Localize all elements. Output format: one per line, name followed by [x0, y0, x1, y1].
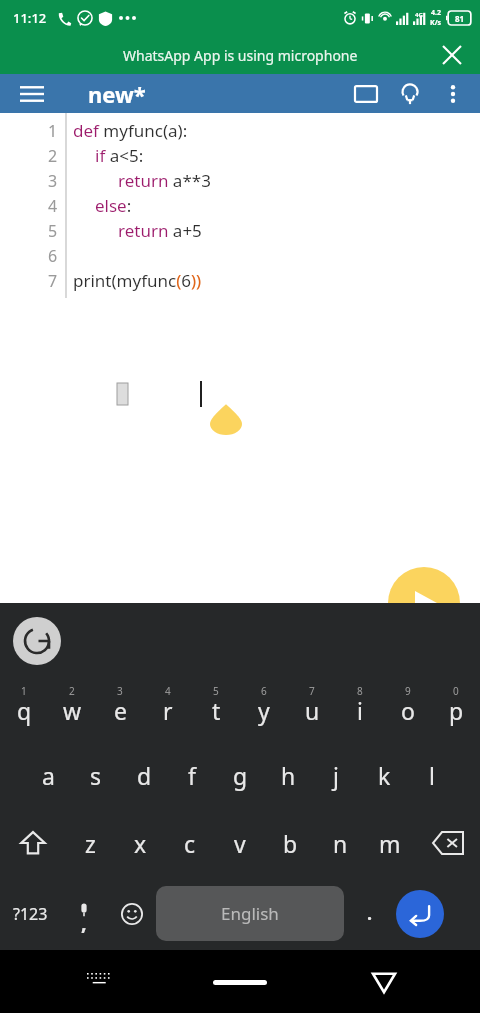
staticText: z — [85, 828, 96, 859]
button[interactable]: x — [115, 809, 165, 877]
button[interactable]: Home — [205, 967, 275, 997]
button[interactable]: l — [408, 741, 456, 809]
button[interactable]: f — [168, 741, 216, 809]
staticText: y — [258, 695, 270, 726]
button[interactable]: Run — [388, 567, 460, 639]
staticText: 7 — [48, 270, 58, 292]
staticText: e — [114, 695, 127, 726]
staticText: a — [42, 760, 55, 791]
staticText: new* — [88, 79, 146, 109]
button[interactable]: Menu — [12, 74, 52, 113]
staticText: g — [233, 760, 248, 791]
button[interactable]: Open file — [344, 74, 388, 113]
button[interactable]: 9 — [384, 673, 432, 741]
staticText: d — [137, 760, 152, 791]
staticText: 2 — [48, 145, 58, 167]
staticText: m — [379, 828, 401, 859]
button[interactable]: d — [120, 741, 168, 809]
staticText: WhatsApp App is using microphone — [123, 46, 358, 65]
staticText: else: — [95, 194, 132, 217]
staticText: 4.2 — [431, 8, 441, 18]
staticText: o — [401, 695, 415, 726]
button[interactable]: English — [156, 886, 344, 941]
staticText: 3 — [48, 170, 58, 192]
button[interactable]: 2 — [48, 673, 96, 741]
button[interactable]: b — [265, 809, 315, 877]
staticText: u — [305, 695, 320, 726]
button[interactable]: Dismiss — [438, 41, 466, 69]
button[interactable]: c — [165, 809, 215, 877]
staticText: p — [449, 695, 464, 726]
staticText: return a+5 — [118, 219, 202, 242]
staticText: h — [281, 760, 296, 791]
button[interactable]: s — [72, 741, 120, 809]
button[interactable]: Back — [362, 960, 406, 1004]
button[interactable]: Shift — [0, 809, 65, 877]
button[interactable]: h — [264, 741, 312, 809]
button[interactable]: 8 — [336, 673, 384, 741]
button[interactable]: 4 — [144, 673, 192, 741]
button[interactable]: a — [24, 741, 72, 809]
staticText: English — [221, 902, 279, 925]
staticText: i — [357, 695, 363, 726]
staticText: 0 — [453, 684, 459, 698]
button[interactable]: Hide keyboard — [78, 960, 122, 1004]
button[interactable]: 0 — [432, 673, 480, 741]
button[interactable]: g — [216, 741, 264, 809]
staticText: if a<5: — [95, 144, 144, 167]
button[interactable]: Hints — [388, 74, 432, 113]
staticText: x — [134, 828, 147, 859]
button[interactable]: 6 — [240, 673, 288, 741]
staticText: 6 — [48, 245, 58, 267]
staticText: ?123 — [13, 903, 48, 925]
staticText: 4 — [48, 195, 58, 217]
button[interactable]: j — [312, 741, 360, 809]
staticText: 9 — [405, 684, 411, 698]
button[interactable]: Grammarly — [13, 617, 61, 665]
button[interactable]: 7 — [288, 673, 336, 741]
button[interactable]: Enter — [396, 890, 444, 938]
staticText: 11:12 — [13, 9, 47, 27]
button[interactable]: 5 — [192, 673, 240, 741]
staticText: K/s — [430, 18, 442, 28]
staticText: , — [81, 909, 87, 936]
button[interactable]: Voice input — [60, 877, 108, 950]
button[interactable]: ?123 — [0, 877, 60, 950]
staticText: 1 — [21, 684, 27, 698]
staticText: w — [63, 695, 82, 726]
staticText: k — [378, 760, 391, 791]
staticText: r — [163, 695, 173, 726]
button[interactable]: z — [65, 809, 115, 877]
staticText: 8 — [357, 684, 363, 698]
staticText: . — [367, 901, 373, 926]
staticText: t — [212, 695, 221, 726]
staticText: n — [333, 828, 348, 859]
button[interactable]: v — [215, 809, 265, 877]
button[interactable]: 3 — [96, 673, 144, 741]
staticText: 7 — [309, 684, 315, 698]
staticText: print(myfunc(6)) — [73, 269, 202, 292]
button[interactable]: . — [344, 877, 396, 950]
staticText: s — [90, 760, 102, 791]
button[interactable]: More options — [432, 74, 474, 113]
staticText: c — [184, 828, 196, 859]
staticText: 3 — [117, 684, 123, 698]
staticText: v — [234, 828, 246, 859]
button[interactable]: n — [315, 809, 365, 877]
button[interactable]: Emoji — [108, 877, 156, 950]
staticText: 4 — [165, 684, 171, 698]
staticText: b — [283, 828, 298, 859]
button[interactable]: Backspace — [415, 809, 480, 877]
staticText: q — [17, 695, 32, 726]
staticText: j — [333, 760, 339, 791]
staticText: 1 — [48, 120, 58, 142]
button[interactable]: m — [365, 809, 415, 877]
button[interactable]: k — [360, 741, 408, 809]
staticText: 6 — [261, 684, 267, 698]
staticText: return a**3 — [118, 169, 211, 192]
staticText: 4G — [415, 11, 423, 19]
staticText: def myfunc(a): — [73, 119, 188, 142]
staticText: f — [188, 760, 196, 791]
staticText: 2 — [69, 684, 75, 698]
button[interactable]: 1 — [0, 673, 48, 741]
